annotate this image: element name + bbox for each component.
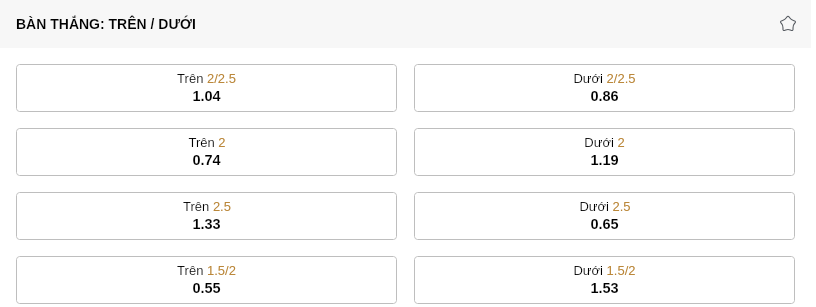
staticText: 1.53	[590, 280, 619, 296]
button[interactable]: Dưới 2/2.5	[414, 64, 795, 112]
button[interactable]: Dưới 1.5/2	[414, 256, 795, 304]
staticText: Dưới 1.5/2	[573, 263, 636, 278]
staticText: 0.74	[192, 152, 221, 168]
button[interactable]: Trên 1.5/2	[16, 256, 397, 304]
button[interactable]: Trên 2	[16, 128, 397, 176]
staticText: Trên 2/2.5	[177, 71, 236, 86]
staticText: BÀN THẮNG: TRÊN / DƯỚI	[16, 16, 196, 32]
button[interactable]: Trên 2.5	[16, 192, 397, 240]
staticText: Dưới 2	[584, 135, 625, 150]
staticText: 0.55	[192, 280, 221, 296]
staticText: 0.86	[590, 88, 619, 104]
staticText: Trên 1.5/2	[177, 263, 236, 278]
staticText: 1.19	[590, 152, 619, 168]
staticText: Trên 2	[188, 135, 226, 150]
staticText: 1.33	[192, 216, 221, 232]
button[interactable]: Dưới 2.5	[414, 192, 795, 240]
staticText: Dưới 2.5	[579, 199, 631, 214]
staticText: 0.65	[590, 216, 619, 232]
staticText: Dưới 2/2.5	[573, 71, 636, 86]
staticText: Trên 2.5	[183, 199, 231, 214]
staticText: 1.04	[192, 88, 221, 104]
button[interactable]: Dưới 2	[414, 128, 795, 176]
button[interactable]: Favourite	[775, 11, 801, 37]
button[interactable]: Trên 2/2.5	[16, 64, 397, 112]
